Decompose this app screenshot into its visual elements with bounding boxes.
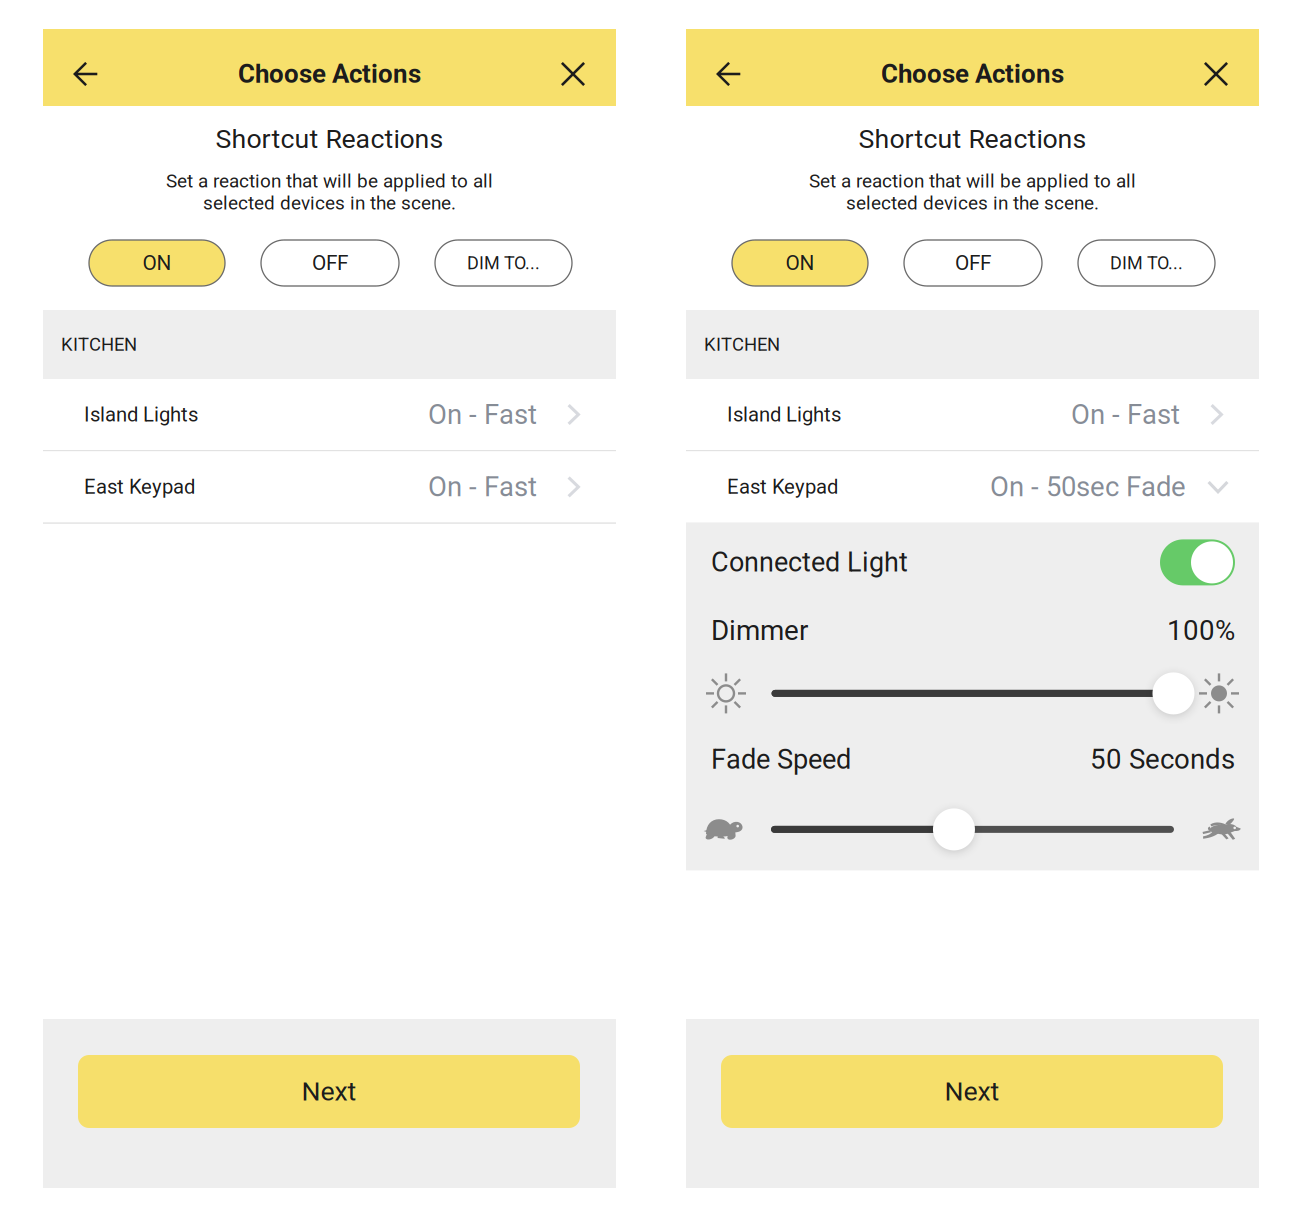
staticText: Shortcut Reactions xyxy=(858,123,1086,155)
staticText: On - 50sec Fade xyxy=(990,471,1186,503)
staticText: OFF xyxy=(955,251,991,275)
staticText: Next xyxy=(301,1076,356,1107)
staticText: Island Lights xyxy=(727,403,841,426)
staticText: OFF xyxy=(312,251,348,275)
button[interactable]: Close xyxy=(1177,46,1255,102)
button[interactable]: Island Lights xyxy=(43,379,616,450)
staticText: East Keypad xyxy=(84,475,195,499)
staticText: Dimmer xyxy=(711,614,808,647)
staticText: selected devices in the scene. xyxy=(203,192,456,214)
staticText: DIM TO... xyxy=(467,252,540,274)
staticText: KITCHEN xyxy=(61,334,137,355)
button[interactable]: Connected Light xyxy=(1160,539,1235,585)
button[interactable]: Fade Speed xyxy=(771,807,1174,851)
staticText: 100% xyxy=(1167,614,1235,647)
staticText: Shortcut Reactions xyxy=(215,123,443,155)
staticText: Choose Actions xyxy=(881,59,1064,89)
staticText: Set a reaction that will be applied to a… xyxy=(166,170,493,192)
staticText: On - Fast xyxy=(428,398,537,431)
staticText: On - Fast xyxy=(428,471,537,503)
staticText: East Keypad xyxy=(727,475,838,499)
button[interactable]: Back xyxy=(47,46,125,102)
button[interactable]: DIM TO... xyxy=(435,240,572,286)
button[interactable]: OFF xyxy=(904,240,1042,286)
button[interactable]: OFF xyxy=(261,240,399,286)
button[interactable]: DIM TO... xyxy=(1078,240,1215,286)
staticText: KITCHEN xyxy=(704,334,780,355)
button[interactable]: ON xyxy=(89,240,225,286)
button[interactable]: East Keypad xyxy=(686,451,1259,522)
staticText: Island Lights xyxy=(84,403,198,426)
staticText: Set a reaction that will be applied to a… xyxy=(809,170,1136,192)
button[interactable]: Close xyxy=(534,46,612,102)
staticText: Choose Actions xyxy=(238,59,421,89)
staticText: ON xyxy=(785,251,814,275)
button[interactable]: Island Lights xyxy=(686,379,1259,450)
button[interactable]: Next xyxy=(78,1055,580,1128)
staticText: Fade Speed xyxy=(711,743,851,775)
button[interactable]: East Keypad xyxy=(43,451,616,522)
staticText: Connected Light xyxy=(711,547,908,578)
button[interactable]: Dimmer xyxy=(771,671,1173,715)
staticText: selected devices in the scene. xyxy=(846,192,1099,214)
button[interactable]: ON xyxy=(732,240,868,286)
staticText: DIM TO... xyxy=(1110,252,1183,274)
staticText: On - Fast xyxy=(1071,398,1180,431)
staticText: Next xyxy=(944,1076,999,1107)
staticText: 50 Seconds xyxy=(1090,743,1235,775)
button[interactable]: Next xyxy=(721,1055,1223,1128)
staticText: ON xyxy=(142,251,171,275)
button[interactable]: Back xyxy=(690,46,768,102)
